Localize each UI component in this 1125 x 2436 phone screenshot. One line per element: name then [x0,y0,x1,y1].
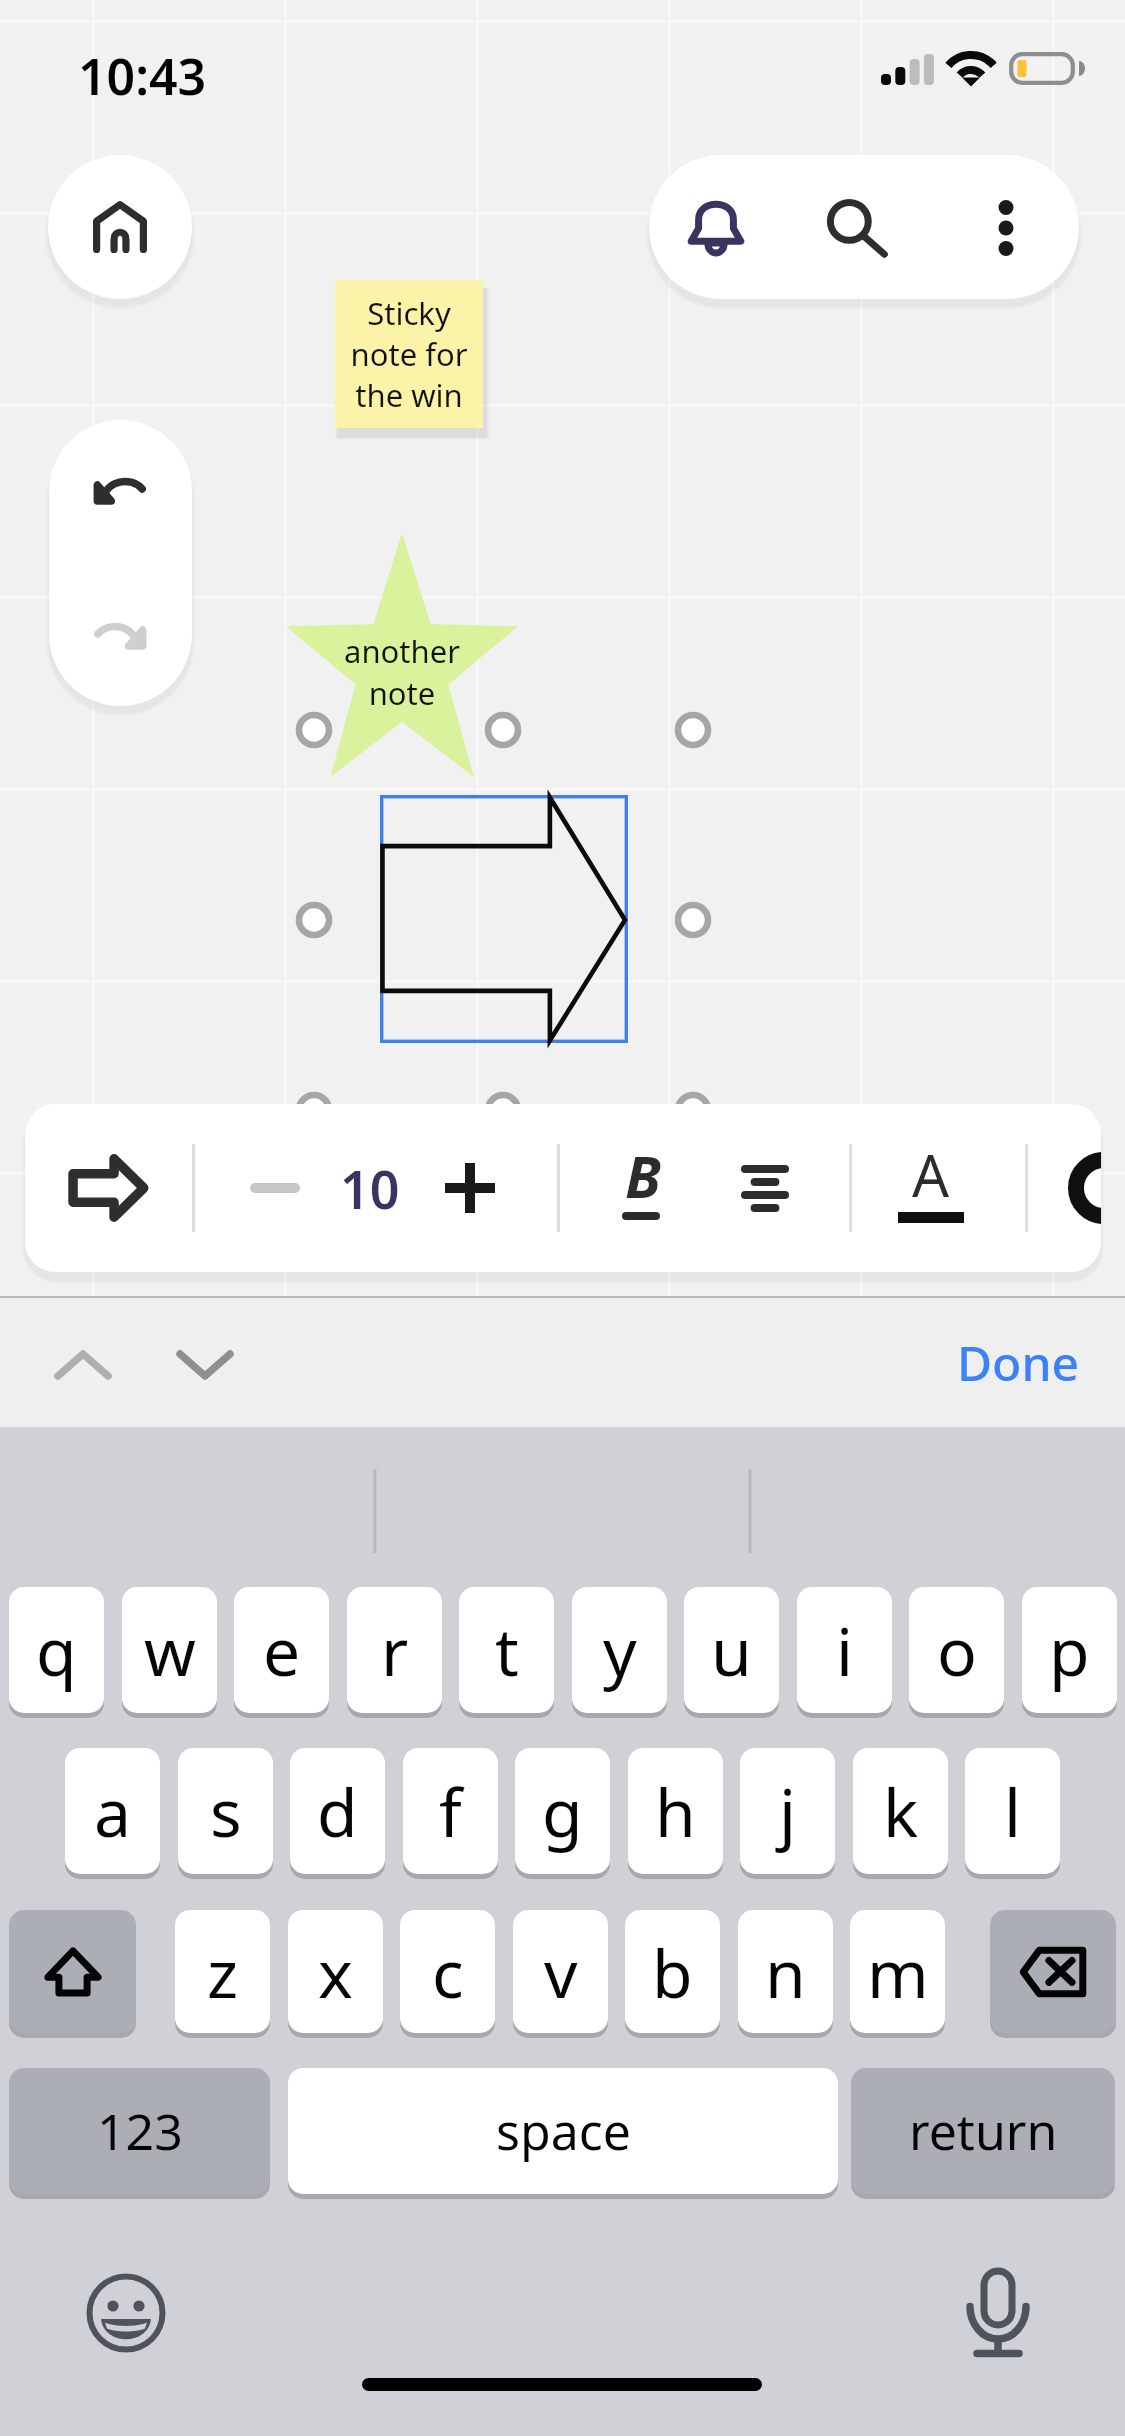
staticText: r [381,1605,409,1695]
staticText: another note [312,630,492,714]
button[interactable]: y [572,1587,667,1713]
button[interactable]: s [178,1748,273,1874]
staticText: i [836,1605,854,1695]
button[interactable]: o [909,1587,1004,1713]
staticText: p [1049,1605,1090,1695]
staticText: v [544,1927,578,2017]
button[interactable]: Emoji [76,2263,176,2363]
button[interactable]: w [122,1587,217,1713]
staticText: o [937,1605,977,1695]
button[interactable]: p [1022,1587,1117,1713]
button[interactable]: 123 [9,2068,270,2194]
button[interactable]: f [403,1748,498,1874]
staticText: 10:43 [78,42,207,110]
button[interactable]: a [65,1748,160,1874]
button[interactable]: Align [710,1128,820,1248]
button[interactable]: q [9,1587,104,1713]
button[interactable]: b [625,1910,720,2033]
staticText: q [36,1605,77,1695]
staticText: s [210,1766,242,1856]
button[interactable]: Dictate [947,2262,1047,2362]
button[interactable]: Redo [60,588,180,688]
staticText: j [779,1766,797,1856]
staticText: Sticky note for the win [343,292,475,416]
button[interactable]: Increase size [422,1133,518,1243]
staticText: h [655,1766,696,1856]
staticText: u [711,1605,752,1695]
button[interactable]: Undo [60,443,180,543]
button[interactable]: More options [946,168,1066,288]
button[interactable]: n [738,1910,833,2033]
button[interactable]: i [797,1587,892,1713]
button[interactable]: Font size 10 [315,1133,425,1243]
button[interactable]: Text color [871,1125,991,1251]
staticText: z [207,1927,239,2017]
staticText: c [432,1927,464,2017]
staticText: m [867,1927,929,2017]
staticText: x [318,1927,353,2017]
button[interactable]: l [965,1748,1060,1874]
button[interactable]: u [684,1587,779,1713]
button[interactable]: m [850,1910,945,2033]
button[interactable]: Shape [52,1128,164,1248]
staticText: k [883,1766,919,1856]
button[interactable]: g [515,1748,610,1874]
staticText: f [439,1766,462,1856]
button[interactable]: t [459,1587,554,1713]
button[interactable]: Done [957,1330,1080,1395]
button[interactable]: Star shape: another note [286,533,518,777]
staticText: Done [957,1330,1080,1395]
button[interactable]: Backspace [990,1910,1116,2033]
button[interactable]: Previous field [33,1315,133,1415]
button[interactable]: v [513,1910,608,2033]
staticText: y [603,1605,637,1695]
staticText: b [652,1927,693,2017]
staticText: A [912,1135,950,1214]
button[interactable]: space [288,2068,838,2194]
staticText: d [317,1766,358,1856]
button[interactable]: Next field [155,1315,255,1415]
button[interactable]: return [851,2068,1115,2194]
button[interactable]: Shift [9,1910,136,2033]
staticText: g [542,1766,583,1856]
staticText: B [625,1136,661,1215]
button[interactable]: e [234,1587,329,1713]
button[interactable]: d [290,1748,385,1874]
button[interactable]: x [288,1910,383,2033]
button[interactable]: r [347,1587,442,1713]
button[interactable]: Bold [588,1128,698,1248]
staticText: w [144,1605,196,1695]
staticText: e [263,1605,301,1695]
button[interactable]: z [175,1910,270,2033]
button[interactable]: j [740,1748,835,1874]
button[interactable]: c [400,1910,495,2033]
button[interactable]: Search [798,168,918,288]
button[interactable]: k [853,1748,948,1874]
button[interactable]: Sticky note for the win [335,280,483,428]
button[interactable]: Selected arrow shape [380,795,628,1043]
staticText: a [94,1766,132,1856]
button[interactable]: Home [48,155,192,299]
staticText: space [496,2097,631,2165]
button[interactable]: Notifications [656,165,776,285]
staticText: 10 [340,1153,400,1224]
button[interactable]: Decrease size [227,1133,323,1243]
staticText: n [765,1927,806,2017]
button[interactable]: Fill color [1068,1152,1101,1224]
button[interactable]: h [628,1748,723,1874]
staticText: t [495,1605,519,1695]
staticText: return [909,2097,1058,2165]
staticText: 123 [97,2097,183,2165]
staticText: l [1004,1766,1022,1856]
